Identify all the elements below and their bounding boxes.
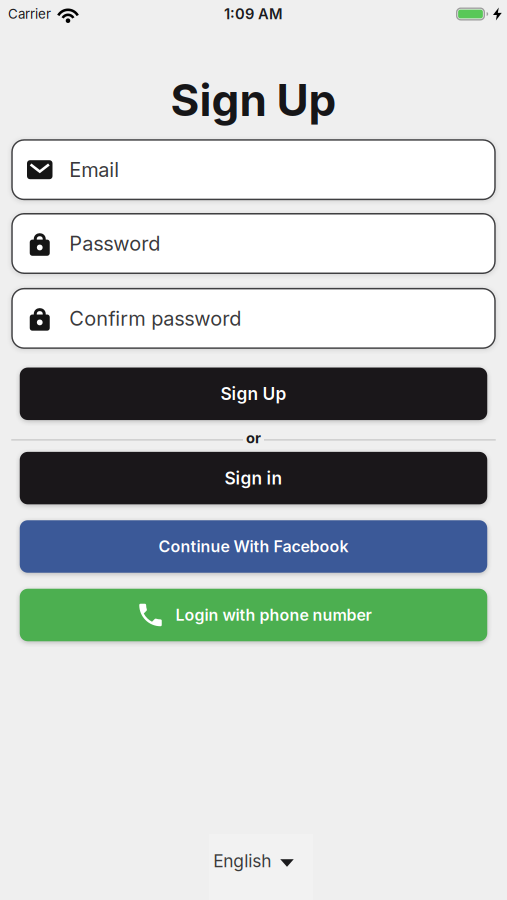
button[interactable]: Login with phone number — [20, 589, 487, 641]
staticText: or — [246, 429, 261, 447]
staticText: Carrier — [8, 6, 51, 22]
button[interactable]: Change language — [203, 845, 304, 877]
staticText: Sign in — [224, 468, 282, 488]
button[interactable]: Password — [11, 213, 496, 274]
button[interactable]: Sign Up — [20, 368, 487, 420]
button[interactable]: Confirm password — [11, 288, 496, 349]
staticText: English — [213, 851, 271, 871]
staticText: Sign Up — [220, 384, 286, 404]
staticText: 1:09 AM — [224, 5, 283, 23]
button[interactable]: Continue With Facebook — [20, 520, 487, 573]
button[interactable]: Sign in — [20, 452, 487, 504]
button[interactable]: Email — [11, 139, 496, 200]
staticText: Password — [69, 232, 160, 255]
staticText: Email — [69, 158, 119, 181]
staticText: Sign Up — [170, 74, 336, 126]
staticText: Continue With Facebook — [158, 537, 348, 556]
staticText: Confirm password — [69, 307, 241, 330]
staticText: Login with phone number — [175, 606, 371, 624]
